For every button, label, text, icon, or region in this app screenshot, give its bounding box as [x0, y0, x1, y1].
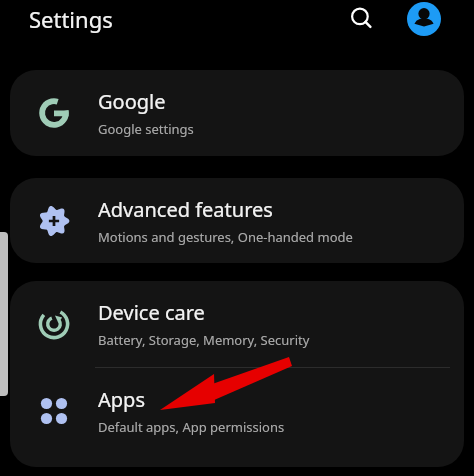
staticText: Device care — [98, 299, 205, 326]
button[interactable]: Advanced features — [10, 178, 464, 263]
button[interactable]: Google — [10, 70, 464, 156]
staticText: Motions and gestures, One-handed mode — [98, 228, 353, 246]
staticText: Advanced features — [98, 196, 273, 223]
staticText: Google — [98, 88, 166, 115]
staticText: Battery, Storage, Memory, Security — [98, 331, 310, 349]
button[interactable]: Search — [340, 0, 384, 39]
button[interactable]: Device care — [10, 281, 464, 367]
button[interactable]: Account — [402, 0, 446, 39]
button[interactable]: Apps — [10, 368, 464, 454]
staticText: Settings — [29, 4, 113, 34]
staticText: Google settings — [98, 120, 194, 138]
staticText: Default apps, App permissions — [98, 418, 285, 436]
staticText: Apps — [98, 386, 145, 413]
